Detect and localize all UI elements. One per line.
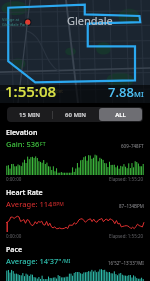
button[interactable]: Pace (0, 245, 150, 281)
staticText: Average: 114 (6, 199, 53, 209)
button[interactable]: 15 MIN (8, 108, 51, 121)
staticText: Average: 14'37" (6, 256, 62, 266)
button[interactable]: Elevation (0, 128, 150, 182)
button[interactable]: Route map (0, 0, 150, 103)
staticText: Goodwill Outlet (30, 88, 63, 94)
staticText: 609–748FT (121, 143, 144, 149)
staticText: 60 MIN (65, 111, 86, 119)
staticText: Glendale (67, 13, 113, 28)
staticText: Heart Rate (6, 188, 43, 198)
staticText: 16'52"–13'33"/MI (108, 260, 144, 266)
staticText: 1:55:08 (5, 81, 57, 101)
staticText: Elevation (6, 128, 38, 138)
staticText: 87–134BPM (119, 203, 144, 209)
staticText: 7.88 (108, 83, 134, 101)
staticText: Gain: 536 (6, 139, 40, 149)
staticText: Elapsed: 1:55:20 (109, 233, 144, 239)
staticText: 0:00:00 (6, 176, 22, 182)
staticText: /MI (62, 258, 71, 265)
staticText: Village at Glendale Park (2, 17, 29, 27)
staticText: Elapsed: 1:55:20 (109, 176, 144, 182)
staticText: BPM (53, 201, 64, 208)
button[interactable]: ALL (99, 108, 142, 121)
button[interactable]: Heart Rate (0, 188, 150, 239)
button[interactable]: 60 MIN (54, 108, 97, 121)
staticText: Pace (6, 245, 23, 255)
staticText: 15 MIN (19, 111, 40, 119)
staticText: MI (134, 89, 144, 99)
staticText: ALL (115, 111, 126, 119)
staticText: 0:00:00 (6, 233, 22, 239)
staticText: FT (40, 141, 46, 148)
